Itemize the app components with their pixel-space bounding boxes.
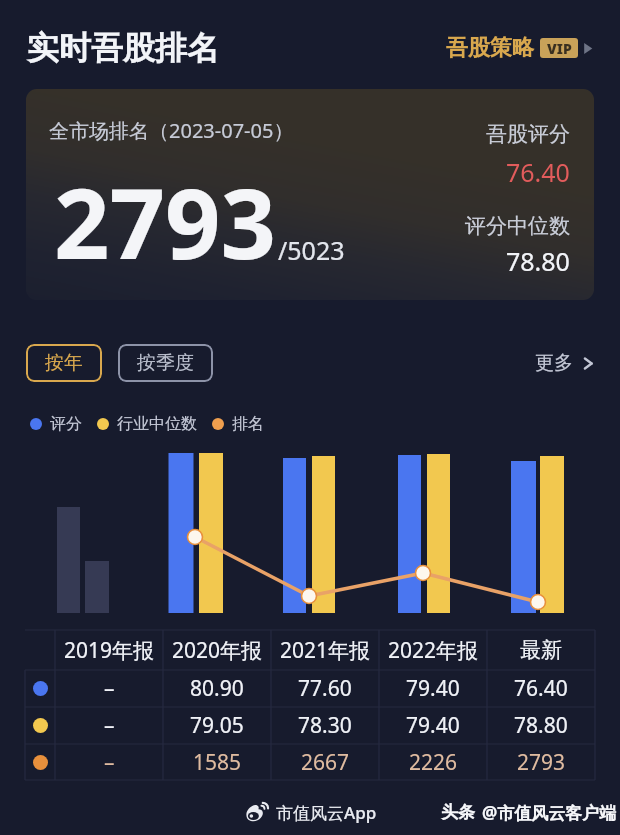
staticText: 78.30 [298, 711, 352, 740]
staticText: VIP [547, 39, 572, 58]
staticText: 评分 [50, 414, 82, 434]
staticText: 2793 [54, 155, 276, 287]
staticText: 市值风云App [276, 801, 377, 824]
staticText: 吾股策略 [446, 34, 534, 62]
button[interactable]: 更多 [535, 345, 594, 381]
staticText: 79.05 [190, 711, 244, 740]
staticText: 2019年报 [64, 636, 155, 665]
staticText: 按年 [45, 351, 83, 375]
staticText: 2021年报 [280, 636, 371, 665]
staticText: 头条 [441, 802, 475, 823]
staticText: – [104, 674, 115, 703]
staticText: 吾股评分 [486, 121, 570, 147]
other: More VIP [582, 42, 594, 55]
staticText: @市值风云客户端 [482, 801, 617, 824]
staticText: 77.60 [298, 674, 352, 703]
staticText: 79.40 [406, 674, 460, 703]
staticText: 76.40 [514, 674, 568, 703]
button[interactable]: 按年 [26, 344, 102, 382]
staticText: – [104, 711, 115, 740]
button[interactable]: 头条 [441, 801, 617, 824]
staticText: 76.40 [506, 155, 570, 189]
staticText: 按季度 [137, 351, 194, 375]
staticText: 排名 [232, 414, 264, 434]
button[interactable]: 按季度 [118, 344, 213, 382]
button[interactable]: Weibo [245, 801, 377, 824]
staticText: 78.80 [514, 711, 568, 740]
staticText: 2020年报 [172, 636, 263, 665]
staticText: 1585 [193, 748, 242, 777]
staticText: 行业中位数 [117, 414, 197, 434]
button[interactable]: 吾股策略 [446, 28, 594, 68]
staticText: 2226 [409, 748, 458, 777]
staticText: 全市场排名（2023-07-05） [49, 117, 294, 144]
staticText: – [104, 748, 115, 777]
staticText: 78.80 [506, 244, 570, 278]
staticText: 实时吾股排名 [27, 28, 219, 68]
staticText: 评分中位数 [465, 213, 570, 239]
staticText: 更多 [535, 351, 573, 375]
other: Weibo [245, 802, 269, 824]
staticText: 79.40 [406, 711, 460, 740]
staticText: 80.90 [190, 674, 244, 703]
staticText: 2793 [517, 748, 566, 777]
staticText: 2022年报 [388, 636, 479, 665]
staticText: 最新 [520, 637, 562, 663]
staticText: 2667 [301, 748, 350, 777]
staticText: /5023 [278, 233, 345, 267]
